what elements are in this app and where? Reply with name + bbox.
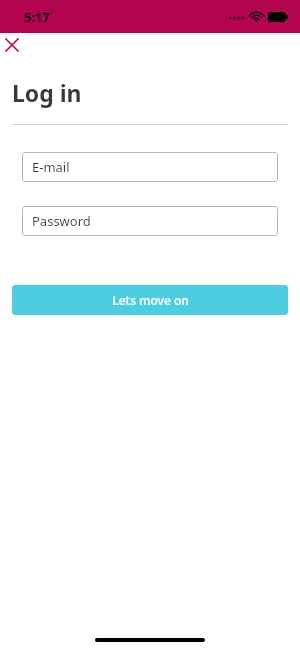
button[interactable]: Lets move on (12, 285, 288, 315)
staticText: 5:17 (24, 8, 50, 26)
staticText: E-mail (32, 158, 70, 176)
staticText: Lets move on (112, 292, 189, 308)
button[interactable]: E-mail (22, 152, 278, 182)
button[interactable]: Close (1, 34, 23, 56)
staticText: Password (32, 212, 91, 230)
button[interactable]: Password (22, 206, 278, 236)
staticText: Log in (12, 77, 82, 108)
